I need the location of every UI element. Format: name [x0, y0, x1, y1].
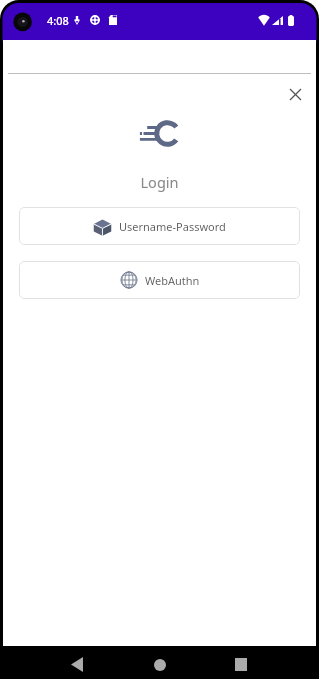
button[interactable]: Recents: [221, 648, 261, 679]
staticText: Login: [3, 172, 316, 192]
button[interactable]: Username-Password: [19, 207, 300, 245]
staticText: WebAuthn: [145, 273, 200, 288]
button[interactable]: Back: [57, 648, 97, 679]
button[interactable]: Close: [282, 81, 308, 107]
staticText: Username-Password: [119, 219, 226, 234]
staticText: 4:08: [47, 13, 69, 28]
button[interactable]: WebAuthn: [19, 261, 300, 299]
button[interactable]: Home: [140, 648, 180, 679]
